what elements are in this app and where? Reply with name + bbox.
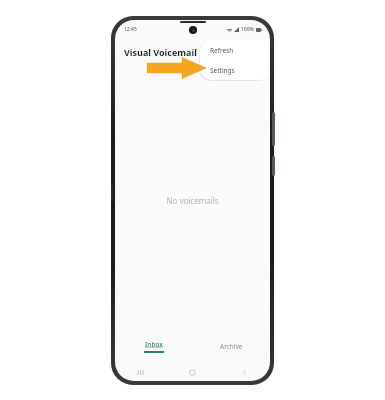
staticText: Visual Voicemail (124, 46, 197, 58)
staticText: Settings (210, 66, 235, 75)
staticText: Refresh (210, 46, 234, 55)
button[interactable]: Settings (200, 60, 270, 80)
button[interactable]: Inbox (115, 340, 192, 353)
staticText: No voicemails (166, 195, 219, 206)
button[interactable]: Back (218, 363, 270, 381)
staticText: 100% (241, 26, 254, 33)
button[interactable]: Recents (115, 363, 166, 381)
staticText: Archive (220, 342, 243, 351)
button[interactable]: Refresh (200, 40, 270, 60)
button[interactable]: Home (166, 363, 218, 381)
button[interactable]: Archive (192, 342, 270, 351)
staticText: 12:45 (124, 26, 137, 33)
staticText: Inbox (145, 340, 163, 349)
